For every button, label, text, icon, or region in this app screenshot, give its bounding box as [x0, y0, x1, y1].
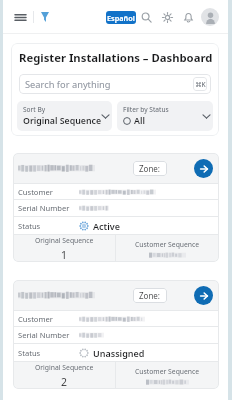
- staticText: Original Sequence: [35, 363, 94, 372]
- staticText: ⌘K: [195, 80, 206, 89]
- button[interactable]: Menu: [13, 10, 27, 24]
- button[interactable]: Zone:: [133, 161, 167, 176]
- staticText: Zone:: [139, 290, 161, 301]
- staticText: Status: [18, 221, 41, 231]
- button[interactable]: Zone:: [133, 288, 167, 303]
- button[interactable]: Open details: [194, 159, 213, 178]
- staticText: Active: [93, 220, 120, 232]
- button[interactable]: Español: [106, 11, 136, 24]
- staticText: Sort By: [23, 105, 46, 114]
- button[interactable]: Filter by Status: [117, 101, 213, 131]
- staticText: Customer Sequence: [135, 367, 200, 376]
- staticText: Unassigned: [93, 347, 145, 359]
- staticText: Serial Number: [18, 203, 70, 213]
- staticText: Customer: [18, 314, 53, 324]
- staticText: Register Installations – Dashboard: [19, 50, 213, 65]
- button[interactable]: Open details: [194, 286, 213, 305]
- staticText: Serial Number: [18, 330, 70, 340]
- button[interactable]: Theme: [157, 8, 178, 26]
- staticText: All: [134, 115, 145, 127]
- staticText: Original Sequence: [23, 115, 102, 127]
- button[interactable]: Search: [136, 8, 157, 26]
- staticText: 1: [61, 248, 68, 262]
- button[interactable]: Notifications: [178, 8, 199, 26]
- staticText: Status: [18, 348, 41, 358]
- button[interactable]: Sort By: [17, 101, 112, 131]
- staticText: Original Sequence: [35, 236, 94, 245]
- button[interactable]: Search for anything: [19, 74, 211, 94]
- staticText: Zone:: [139, 163, 161, 174]
- button[interactable]: Home: [39, 11, 51, 23]
- staticText: Filter by Status: [123, 105, 169, 114]
- staticText: 2: [61, 375, 68, 389]
- button[interactable]: Zone:: [13, 153, 219, 262]
- staticText: Español: [107, 13, 135, 23]
- staticText: Customer Sequence: [135, 240, 200, 249]
- staticText: Search for anything: [25, 78, 111, 91]
- staticText: Customer: [18, 187, 53, 197]
- button[interactable]: Account: [201, 8, 219, 26]
- button[interactable]: Zone:: [13, 280, 219, 389]
